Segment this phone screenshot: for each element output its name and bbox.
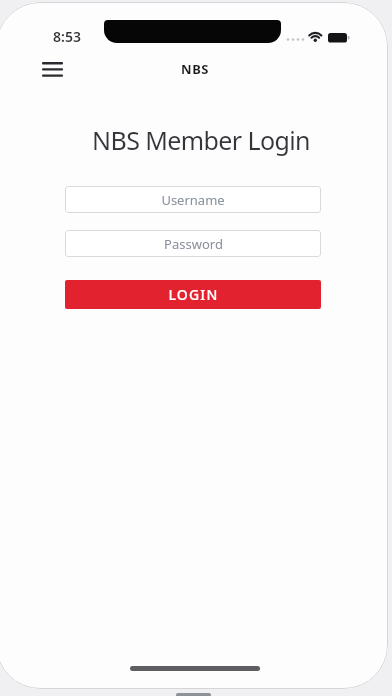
staticText: Username — [161, 191, 225, 209]
staticText: LOGIN — [168, 285, 219, 304]
staticText: NBS Member Login — [92, 123, 310, 157]
staticText: Password — [164, 235, 223, 253]
button[interactable] — [32, 54, 72, 84]
staticText: 8:53 — [53, 27, 81, 46]
staticText: NBS — [181, 60, 209, 78]
button[interactable]: Password — [65, 230, 321, 257]
button[interactable]: Username — [65, 186, 321, 213]
button[interactable]: LOGIN — [65, 280, 321, 309]
